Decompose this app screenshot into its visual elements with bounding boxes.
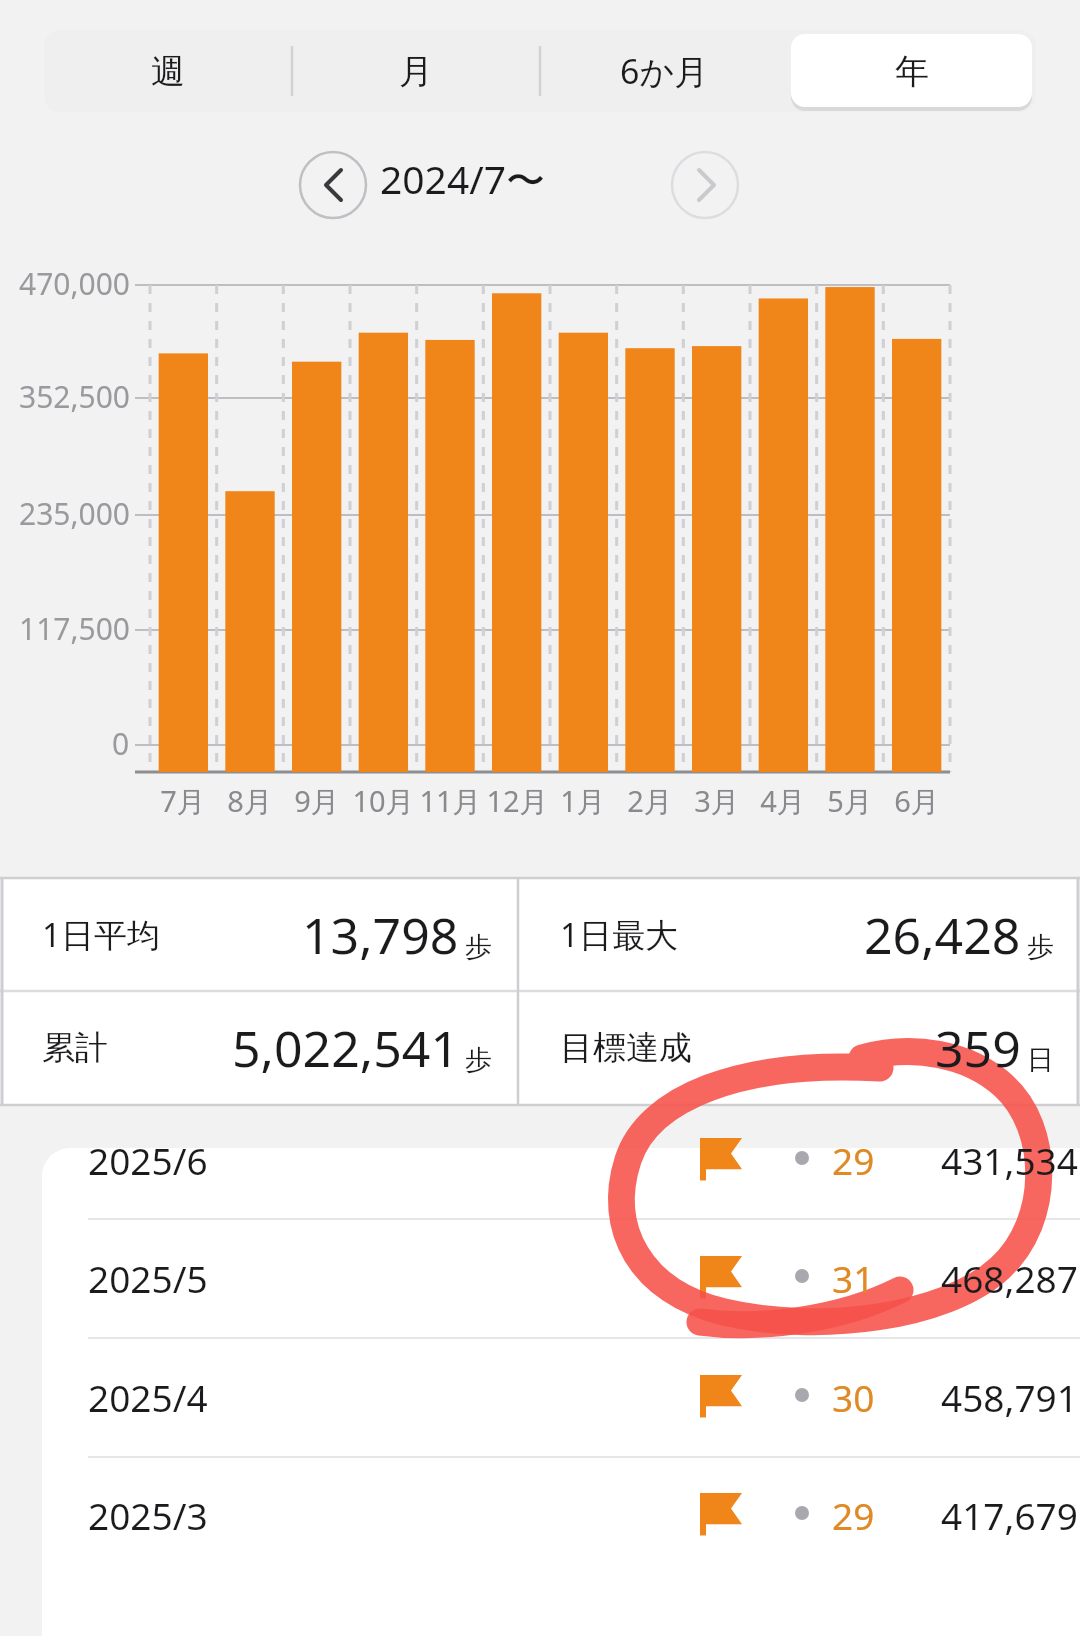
staticText: 9月: [294, 781, 340, 821]
staticText: 月: [399, 50, 433, 93]
button[interactable]: 月: [292, 30, 540, 112]
button[interactable]: 2025/4: [42, 1338, 1080, 1456]
staticText: 歩: [1027, 930, 1054, 964]
staticText: 歩: [465, 1043, 492, 1077]
staticText: 5月: [827, 781, 873, 821]
staticText: 4月: [760, 781, 806, 821]
button[interactable]: 2025/5: [42, 1219, 1080, 1337]
button[interactable]: 2025/3: [42, 1456, 1080, 1574]
staticText: 3月: [694, 781, 740, 821]
staticText: 2025/4: [88, 1372, 208, 1422]
staticText: 累計: [42, 1027, 108, 1069]
button[interactable]: 次の期間: [672, 152, 738, 218]
staticText: 30: [832, 1372, 875, 1422]
staticText: 431,534: [941, 1135, 1078, 1185]
staticText: 年: [895, 50, 929, 93]
staticText: 468,287: [941, 1253, 1078, 1303]
staticText: 2月: [627, 781, 673, 821]
staticText: 週: [151, 50, 185, 93]
staticText: 5,022,541: [232, 1014, 459, 1082]
staticText: 7月: [160, 781, 206, 821]
button[interactable]: 1日平均: [0, 878, 518, 991]
staticText: 日: [1027, 1043, 1054, 1077]
staticText: 12月: [486, 781, 549, 821]
staticText: 417,679: [941, 1490, 1078, 1540]
staticText: 2024/7〜2025/6: [380, 152, 652, 218]
staticText: 6月: [894, 781, 940, 821]
staticText: 13,798: [302, 901, 459, 969]
staticText: 目標達成: [560, 1027, 692, 1069]
staticText: 31: [832, 1253, 875, 1303]
button[interactable]: 1日最大: [518, 878, 1080, 991]
staticText: 6か月: [620, 48, 709, 94]
staticText: 359: [935, 1014, 1021, 1082]
staticText: 29: [832, 1490, 875, 1540]
button[interactable]: 週: [44, 30, 292, 112]
staticText: 352,500: [19, 376, 130, 417]
staticText: 8月: [227, 781, 273, 821]
staticText: 11月: [419, 781, 482, 821]
staticText: 470,000: [19, 263, 130, 304]
button[interactable]: 6か月: [540, 30, 788, 112]
button[interactable]: 前の期間: [300, 152, 366, 218]
staticText: 235,000: [19, 493, 130, 534]
button[interactable]: 2025/6: [42, 1101, 1080, 1219]
staticText: 1月: [560, 781, 606, 821]
staticText: 458,791: [941, 1372, 1078, 1422]
button[interactable]: 目標達成: [518, 991, 1080, 1104]
staticText: 2025/6: [88, 1135, 208, 1185]
staticText: 1日平均: [42, 912, 160, 957]
button[interactable]: 年: [788, 30, 1036, 112]
staticText: 1日最大: [560, 912, 678, 957]
staticText: 29: [832, 1135, 875, 1185]
staticText: 2025/3: [88, 1490, 208, 1540]
staticText: 0: [112, 723, 130, 764]
staticText: 117,500: [19, 608, 130, 649]
button[interactable]: 累計: [0, 991, 518, 1104]
staticText: 歩: [465, 930, 492, 964]
staticText: 26,428: [864, 901, 1021, 969]
staticText: 2025/5: [88, 1253, 208, 1303]
staticText: 10月: [352, 781, 415, 821]
